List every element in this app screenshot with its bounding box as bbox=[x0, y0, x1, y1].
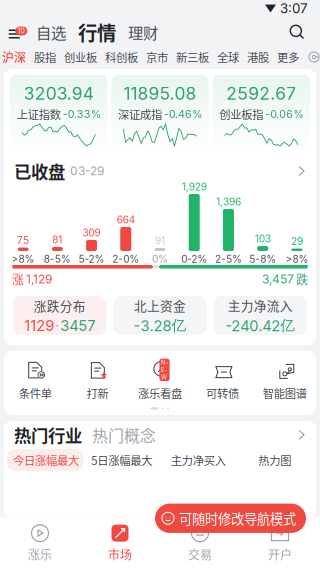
button[interactable]: 新三板 bbox=[172, 47, 213, 67]
staticText: 3457 bbox=[60, 317, 95, 334]
staticText: 2-5% bbox=[215, 253, 242, 265]
staticText: 309 bbox=[83, 227, 101, 239]
button[interactable]: Search bbox=[283, 18, 320, 46]
button[interactable]: 热门概念 bbox=[92, 423, 156, 446]
staticText: NEW bbox=[161, 359, 168, 381]
staticText: 市场 bbox=[108, 546, 132, 563]
staticText: 1,396 bbox=[216, 196, 241, 208]
staticText: 京市 bbox=[146, 49, 168, 65]
staticText: 涨乐看盘 bbox=[138, 385, 182, 401]
staticText: 03-29 bbox=[70, 164, 104, 178]
staticText: 主力净买入 bbox=[171, 452, 226, 468]
button[interactable]: 热力图 bbox=[258, 449, 291, 471]
staticText: · bbox=[55, 317, 59, 334]
staticText: 3,457 bbox=[262, 272, 294, 286]
staticText: 今日涨幅最大 bbox=[13, 452, 79, 468]
staticText: -0.33% bbox=[63, 108, 101, 121]
staticText: 5-2% bbox=[79, 253, 105, 265]
button[interactable]: Menu bbox=[0, 23, 30, 41]
staticText: 更多 bbox=[277, 49, 299, 65]
button[interactable]: 开户 bbox=[240, 524, 320, 563]
staticText: 29 bbox=[291, 235, 303, 247]
staticText: 创业板 bbox=[64, 49, 97, 65]
staticText: 北上资金 bbox=[134, 296, 186, 314]
button[interactable]: 5日涨幅最大 bbox=[91, 449, 152, 471]
staticText: -0.46% bbox=[164, 108, 202, 121]
button[interactable]: 11895.08 bbox=[111, 75, 209, 153]
button[interactable]: 沪深 bbox=[0, 47, 30, 67]
staticText: -240.42亿 bbox=[225, 316, 295, 335]
staticText: 理财 bbox=[128, 21, 158, 43]
button[interactable]: 涨跌分布 bbox=[13, 296, 106, 335]
staticText: 开户 bbox=[268, 546, 292, 563]
staticText: 打新 bbox=[87, 385, 109, 401]
button[interactable]: 京市 bbox=[142, 47, 172, 67]
button[interactable]: 主力净流入 bbox=[214, 296, 307, 335]
staticText: 热门行业 bbox=[14, 422, 82, 447]
staticText: 5-8% bbox=[249, 253, 276, 265]
staticText: 热力图 bbox=[258, 452, 291, 468]
staticText: 81 bbox=[52, 234, 62, 246]
staticText: 664 bbox=[117, 214, 135, 226]
staticText: 2592.67 bbox=[226, 83, 296, 104]
button[interactable]: 更多 bbox=[273, 47, 303, 67]
staticText: -0.06% bbox=[265, 108, 303, 121]
staticText: 涨 bbox=[12, 270, 24, 288]
button[interactable]: 港股 bbox=[243, 47, 273, 67]
staticText: 深证成指 bbox=[118, 106, 162, 122]
staticText: 涨乐 bbox=[28, 546, 52, 563]
button[interactable]: 全球 bbox=[213, 47, 243, 67]
button[interactable]: 交易 bbox=[160, 524, 240, 563]
button[interactable]: 北上资金 bbox=[113, 296, 207, 335]
button[interactable]: 可随时修改导航模式 bbox=[155, 504, 306, 533]
staticText: 0% bbox=[152, 253, 168, 265]
button[interactable]: 创业板 bbox=[60, 47, 101, 67]
staticText: 可随时修改导航模式 bbox=[179, 509, 296, 528]
staticText: 条件单 bbox=[19, 385, 52, 401]
staticText: 智能图谱 bbox=[263, 385, 307, 401]
button[interactable]: 条件单 bbox=[4, 360, 66, 401]
staticText: 交易 bbox=[188, 546, 212, 563]
button[interactable]: 已收盘 bbox=[4, 158, 316, 184]
button[interactable]: 理财 bbox=[122, 18, 164, 46]
staticText: 股指 bbox=[34, 49, 56, 65]
button[interactable]: 3203.94 bbox=[10, 75, 107, 153]
button[interactable]: 2592.67 bbox=[213, 75, 310, 153]
staticText: 103 bbox=[255, 233, 271, 245]
staticText: 自选 bbox=[36, 21, 66, 43]
staticText: 已收盘 bbox=[14, 158, 65, 184]
button[interactable]: 主力净买入 bbox=[171, 449, 226, 471]
button[interactable]: 市场 bbox=[80, 524, 160, 563]
staticText: 沪深 bbox=[2, 48, 26, 66]
staticText: 行情 bbox=[78, 18, 116, 46]
staticText: 5日涨幅最大 bbox=[91, 452, 152, 468]
staticText: 1,129 bbox=[26, 272, 52, 286]
staticText: 港股 bbox=[247, 49, 269, 65]
staticText: 主力净流入 bbox=[228, 296, 293, 314]
button[interactable]: 热门行业 bbox=[14, 422, 82, 447]
staticText: 3203.94 bbox=[24, 83, 94, 104]
button[interactable]: 可转债 bbox=[191, 360, 254, 401]
button[interactable]: NEW bbox=[129, 360, 191, 401]
button[interactable]: 股指 bbox=[30, 47, 60, 67]
staticText: 热门概念 bbox=[92, 423, 156, 446]
staticText: 科创板 bbox=[105, 49, 138, 65]
button[interactable]: 今日涨幅最大 bbox=[7, 449, 83, 471]
staticText: 2-0% bbox=[112, 253, 139, 265]
staticText: 1129 bbox=[24, 317, 54, 334]
staticText: 涨跌分布 bbox=[34, 296, 86, 315]
button[interactable]: Edit categories bbox=[303, 47, 320, 67]
staticText: 0-2% bbox=[181, 253, 207, 265]
staticText: 新三板 bbox=[176, 49, 209, 65]
button[interactable]: 科创板 bbox=[101, 47, 142, 67]
staticText: 全球 bbox=[217, 49, 239, 65]
button[interactable]: 涨乐 bbox=[0, 524, 80, 563]
staticText: >8% bbox=[285, 253, 308, 265]
staticText: 1,929 bbox=[182, 181, 207, 193]
button[interactable]: More hot sectors bbox=[299, 430, 304, 439]
staticText: 11895.08 bbox=[123, 83, 196, 104]
button[interactable]: 智能图谱 bbox=[254, 360, 316, 401]
button[interactable]: 行情 bbox=[72, 18, 122, 46]
button[interactable]: 自选 bbox=[30, 18, 72, 46]
button[interactable]: 打新 bbox=[66, 360, 129, 401]
